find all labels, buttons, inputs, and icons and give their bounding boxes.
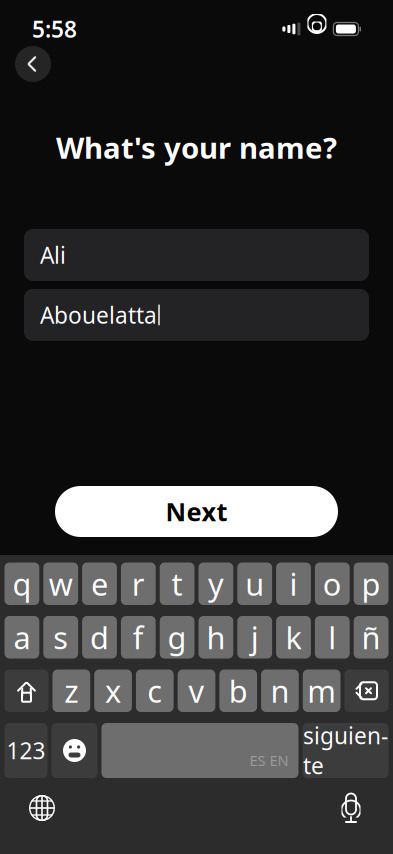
button[interactable]: e — [82, 562, 117, 605]
staticText: h — [206, 617, 225, 658]
button[interactable]: b — [219, 669, 257, 712]
button[interactable]: Ali — [24, 229, 369, 281]
staticText: d — [90, 617, 109, 658]
staticText: 123 — [6, 735, 45, 765]
staticText: i — [289, 563, 297, 604]
button[interactable]: space — [101, 723, 298, 778]
button[interactable]: u — [237, 562, 272, 605]
button[interactable]: z — [52, 669, 90, 712]
button[interactable]: Shift — [4, 669, 48, 712]
button[interactable]: a — [4, 616, 39, 658]
button[interactable]: Next — [55, 486, 338, 537]
staticText: x — [105, 670, 121, 711]
staticText: e — [91, 563, 108, 604]
staticText: z — [64, 670, 78, 711]
staticText: What's your name? — [56, 128, 337, 167]
button[interactable]: Abouelatta — [24, 289, 369, 341]
button[interactable]: ñ — [354, 616, 388, 658]
button[interactable]: l — [315, 616, 350, 658]
button[interactable]: n — [261, 669, 299, 712]
button[interactable]: y — [198, 562, 233, 605]
button[interactable]: f — [121, 616, 156, 658]
button[interactable]: x — [94, 669, 132, 712]
staticText: f — [133, 617, 144, 658]
staticText: o — [323, 563, 342, 604]
staticText: s — [53, 617, 68, 658]
staticText: w — [49, 563, 73, 604]
button[interactable]: m — [303, 669, 340, 712]
button[interactable]: siguiente — [302, 723, 388, 778]
staticText: v — [188, 670, 204, 711]
button[interactable]: r — [121, 562, 156, 605]
staticText: ES EN — [249, 750, 288, 770]
staticText: g — [168, 617, 187, 658]
staticText: q — [12, 563, 31, 604]
staticText: Next — [165, 495, 227, 528]
button[interactable]: s — [43, 616, 78, 658]
button[interactable]: w — [43, 562, 78, 605]
button[interactable]: t — [160, 562, 194, 605]
staticText: t — [172, 563, 183, 604]
staticText: n — [270, 670, 289, 711]
staticText: k — [285, 617, 301, 658]
button[interactable]: Delete — [344, 669, 388, 712]
staticText: a — [13, 617, 30, 658]
staticText: l — [328, 617, 336, 658]
staticText: Abouelatta — [40, 300, 157, 330]
button[interactable]: Next keyboard — [20, 786, 64, 830]
staticText: ñ — [362, 617, 381, 658]
staticText: p — [362, 563, 381, 604]
button[interactable]: g — [160, 616, 194, 658]
staticText: 5:58 — [32, 14, 77, 44]
staticText: Ali — [40, 240, 66, 270]
staticText: j — [251, 617, 259, 658]
button[interactable]: 123 — [4, 723, 47, 778]
staticText: u — [245, 563, 264, 604]
button[interactable]: c — [136, 669, 174, 712]
button[interactable]: Dictate — [329, 786, 373, 830]
button[interactable]: q — [4, 562, 39, 605]
button[interactable]: h — [198, 616, 233, 658]
button[interactable]: o — [315, 562, 350, 605]
staticText: siguiente — [303, 720, 388, 781]
staticText: r — [132, 563, 145, 604]
staticText: y — [208, 563, 224, 604]
button[interactable]: v — [178, 669, 215, 712]
button[interactable]: d — [82, 616, 117, 658]
button[interactable]: j — [237, 616, 272, 658]
button[interactable]: k — [276, 616, 311, 658]
button[interactable]: i — [276, 562, 311, 605]
staticText: m — [307, 670, 336, 711]
button[interactable]: Back — [15, 46, 51, 82]
staticText: b — [229, 670, 248, 711]
staticText: c — [147, 670, 162, 711]
button[interactable]: p — [354, 562, 388, 605]
button[interactable]: Emoji — [51, 723, 97, 778]
